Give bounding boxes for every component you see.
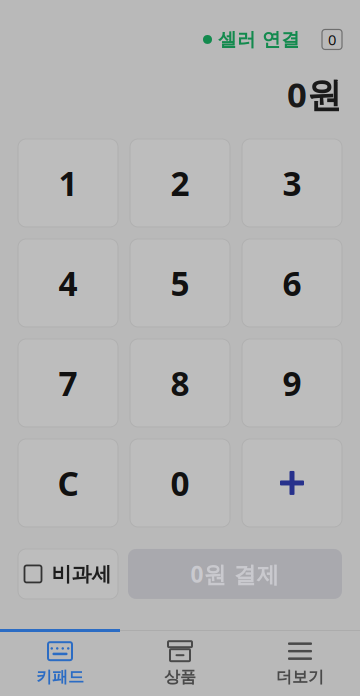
staticText: 0원 결제 [190, 559, 279, 589]
staticText: 키패드 [36, 667, 84, 687]
button[interactable]: 6 [242, 239, 342, 327]
button[interactable]: 8 [130, 339, 230, 427]
button[interactable]: 2 [130, 139, 230, 227]
staticText: 7 [58, 361, 77, 405]
button[interactable]: 0 [130, 439, 230, 527]
button[interactable]: 비과세 [18, 549, 118, 599]
button[interactable]: 7 [18, 339, 118, 427]
staticText: C [57, 461, 78, 505]
button[interactable]: 상품 [120, 632, 240, 696]
button[interactable]: 5 [130, 239, 230, 327]
button[interactable]: 더하기 [242, 439, 342, 527]
button[interactable]: 키패드 [0, 632, 120, 696]
staticText: 비과세 [51, 562, 111, 586]
staticText: 상품 [164, 667, 196, 687]
button[interactable]: 셀러 연결 [203, 28, 300, 51]
button[interactable]: 0원 결제 [128, 549, 342, 599]
button[interactable]: 4 [18, 239, 118, 327]
button[interactable]: 1 [18, 139, 118, 227]
staticText: 1 [58, 161, 77, 205]
button[interactable]: 알림 0건 [322, 29, 342, 49]
button[interactable]: C [18, 439, 118, 527]
button[interactable]: 더보기 [240, 632, 360, 696]
staticText: 5 [170, 261, 189, 305]
staticText: 0 [170, 461, 189, 505]
button[interactable]: 3 [242, 139, 342, 227]
staticText: 3 [282, 161, 301, 205]
staticText: 9 [282, 361, 301, 405]
staticText: 더보기 [276, 667, 324, 687]
staticText: 0원 [287, 71, 342, 117]
staticText: 0 [328, 30, 336, 49]
staticText: 셀러 연결 [218, 28, 300, 51]
staticText: 8 [170, 361, 189, 405]
button[interactable]: 9 [242, 339, 342, 427]
staticText: 2 [170, 161, 189, 205]
staticText: 6 [282, 261, 301, 305]
staticText: 4 [58, 261, 77, 305]
